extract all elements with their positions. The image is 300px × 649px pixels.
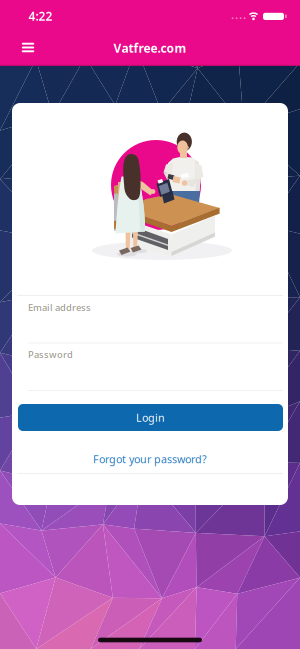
secureTextField[interactable]: Password [28, 348, 283, 361]
staticText: Email address [28, 301, 91, 314]
button[interactable]: Forgot your password? [50, 449, 250, 469]
staticText: Login [136, 410, 165, 425]
staticText: 4:22 [28, 8, 52, 24]
button[interactable]: Login [18, 404, 283, 431]
button[interactable]: Menu [13, 32, 43, 62]
staticText: Password [28, 348, 73, 361]
staticText: Forgot your password? [93, 452, 207, 466]
textField[interactable]: Email address [28, 301, 283, 314]
staticText: Vatfree.com [113, 40, 186, 56]
